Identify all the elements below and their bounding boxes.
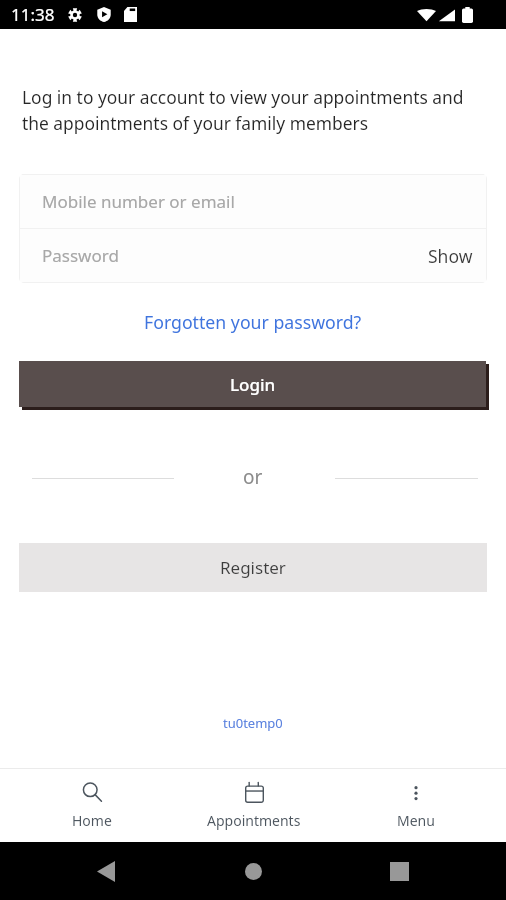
staticText: or: [243, 464, 263, 488]
button[interactable]: Login: [19, 361, 486, 407]
staticText: Show: [428, 244, 473, 268]
button[interactable]: Menu: [335, 769, 497, 842]
staticText: Login: [230, 373, 276, 396]
staticText: tu0temp0: [223, 714, 283, 732]
staticText: Password: [42, 244, 119, 267]
button[interactable]: Back: [86, 851, 126, 891]
staticText: Register: [220, 556, 286, 579]
button[interactable]: Password: [20, 229, 486, 282]
button[interactable]: Appointments: [173, 769, 335, 842]
button[interactable]: Recent apps: [379, 851, 419, 891]
staticText: Home: [72, 811, 112, 830]
button[interactable]: Mobile number or email: [20, 175, 486, 228]
staticText: Appointments: [207, 811, 301, 830]
button[interactable]: Home: [11, 769, 173, 842]
button[interactable]: Home: [233, 851, 273, 891]
staticText: Menu: [397, 811, 435, 830]
button[interactable]: Forgotten your password?: [140, 306, 366, 338]
staticText: Log in to your account to view your appo…: [22, 85, 464, 135]
button[interactable]: Register: [19, 543, 487, 592]
staticText: 11:38: [11, 3, 55, 26]
staticText: Mobile number or email: [42, 190, 235, 213]
